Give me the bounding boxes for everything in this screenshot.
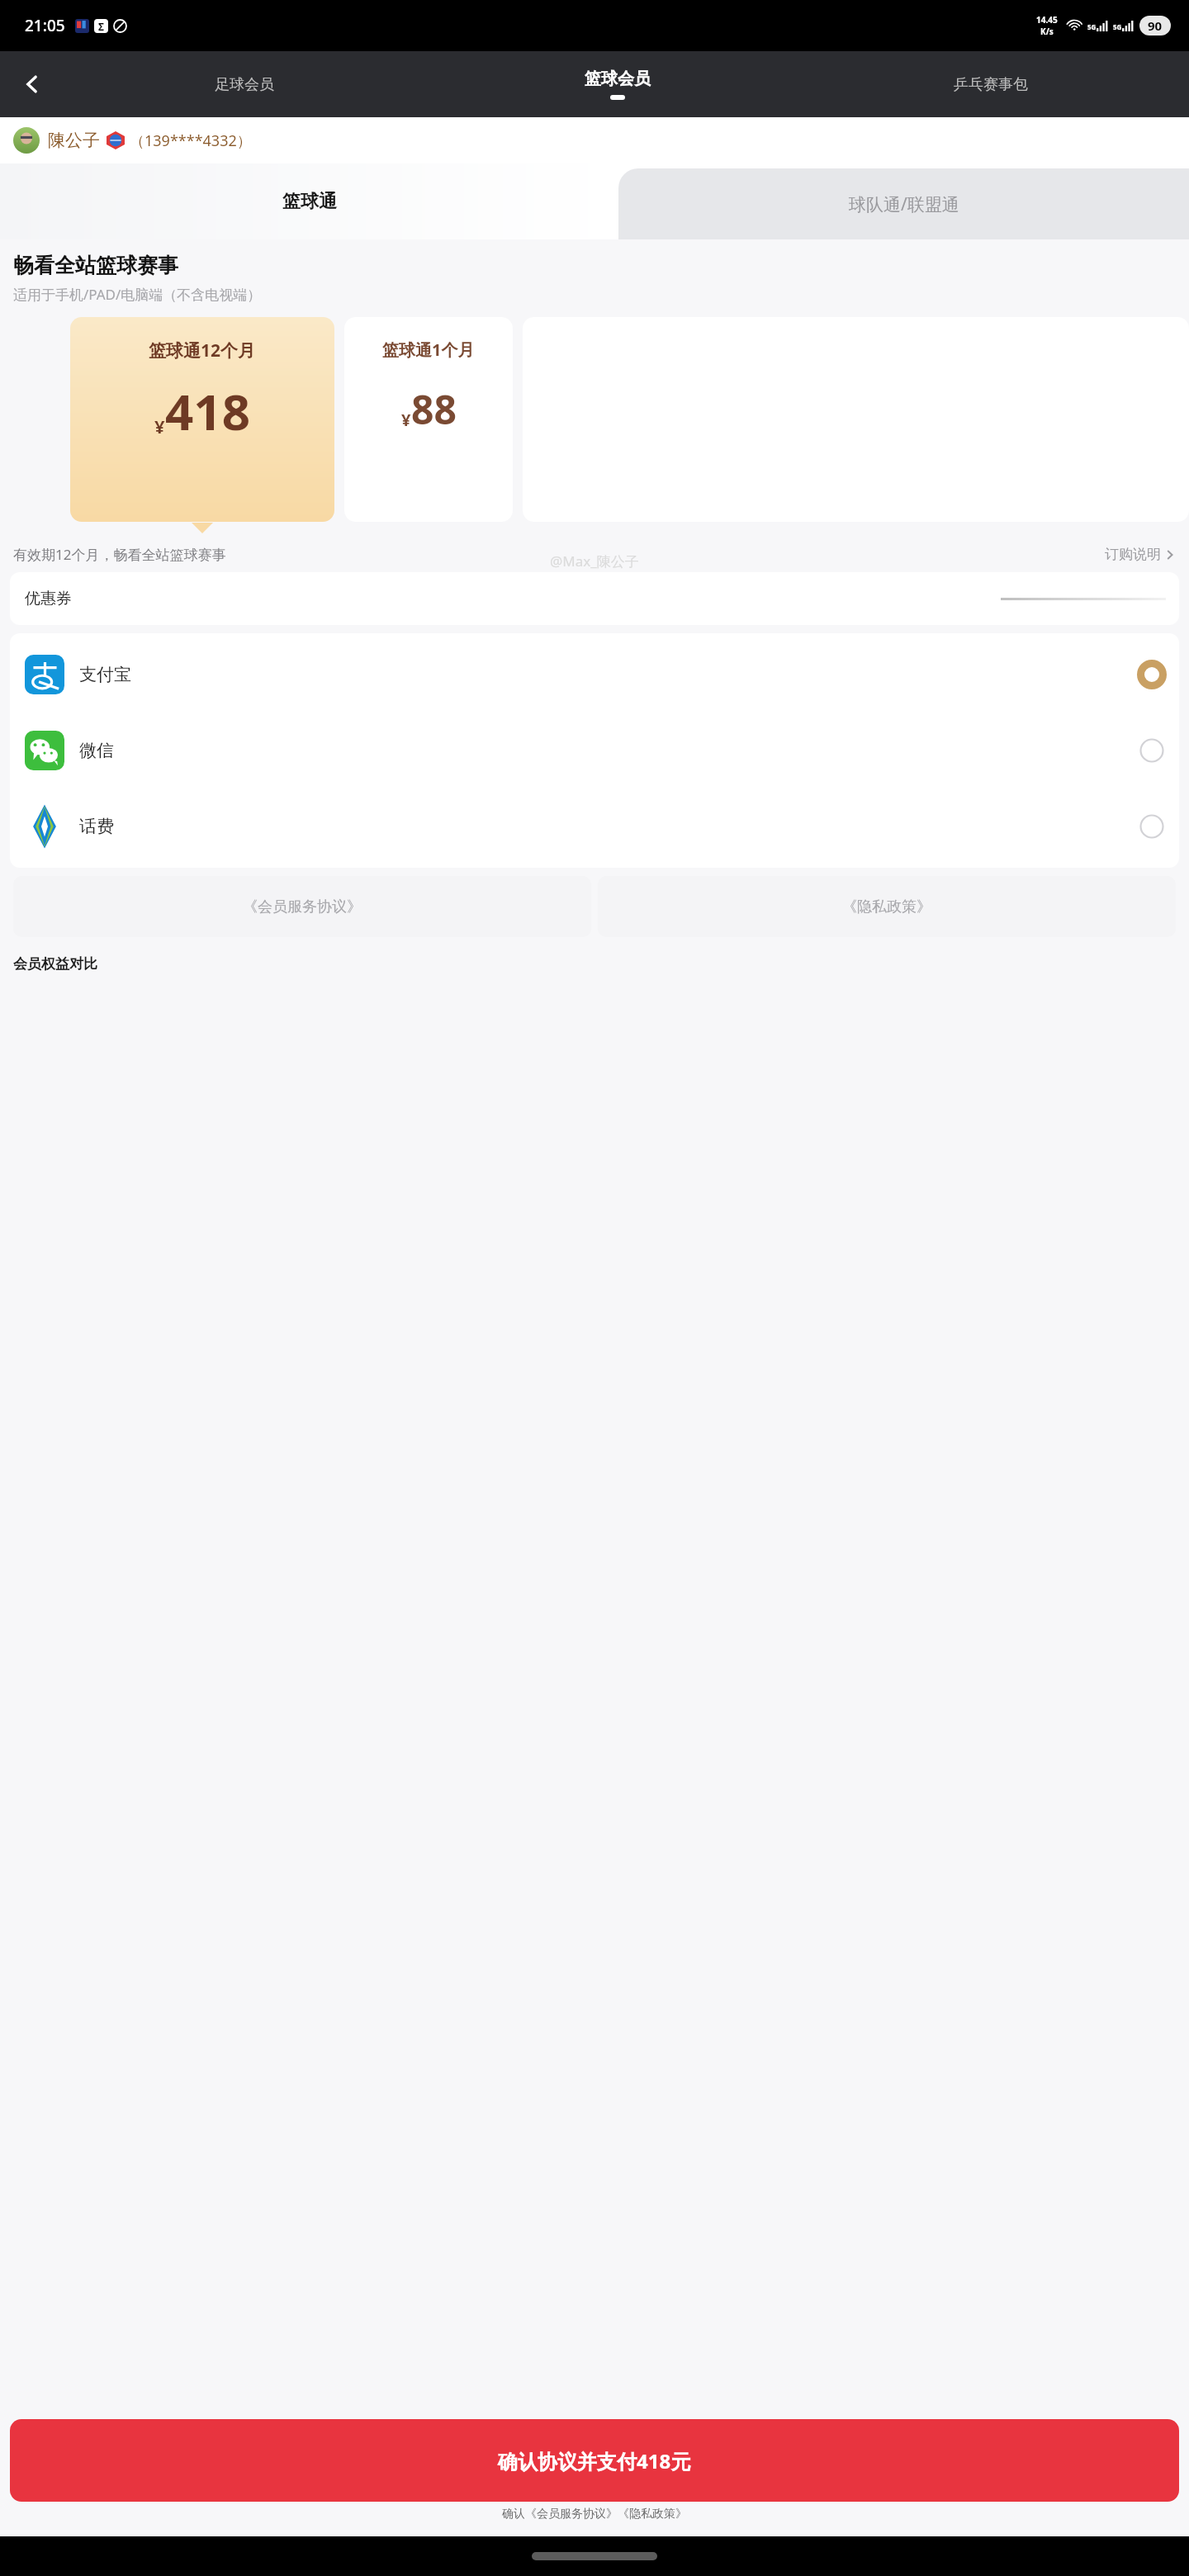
staticText: 有效期12个月，畅看全站篮球赛事 [13, 545, 226, 564]
button[interactable]: 话费 [10, 788, 1179, 864]
staticText: 优惠券 [25, 589, 72, 608]
button[interactable]: 支付宝 [10, 637, 1179, 713]
staticText: K/s [1040, 26, 1054, 37]
staticText: 适用于手机/PAD/电脑端（不含电视端） [13, 285, 262, 304]
button[interactable]: 球队通/联盟通 [618, 168, 1189, 239]
staticText: 418 [165, 377, 250, 445]
staticText: 88 [411, 382, 457, 436]
button[interactable]: 订购说明 [1105, 546, 1176, 563]
staticText: 微信 [79, 740, 114, 761]
staticText: 足球会员 [215, 75, 274, 94]
button[interactable]: 优惠券 [10, 572, 1179, 625]
button[interactable]: Back [21, 73, 43, 95]
staticText: 陳公子 [48, 130, 100, 151]
staticText: 球队通/联盟通 [849, 192, 959, 216]
button[interactable]: 篮球会员 [431, 51, 804, 117]
staticText: 会员权益对比 [13, 955, 97, 973]
button[interactable]: 篮球通 [0, 163, 618, 239]
button[interactable]: 确认协议并支付418元 [10, 2419, 1179, 2502]
staticText: 话费 [79, 816, 114, 837]
button[interactable]: 陳公子 [13, 127, 1189, 154]
button[interactable]: 微信 [10, 713, 1179, 788]
staticText: 21:05 [25, 15, 65, 36]
staticText: 5G [1113, 22, 1122, 31]
staticText: 篮球通 [282, 190, 337, 213]
staticText: 《会员服务协议》 [243, 897, 362, 916]
staticText: 确认协议并支付418元 [498, 2447, 691, 2474]
staticText: 《隐私政策》 [842, 897, 931, 916]
staticText: 5G [1087, 22, 1097, 31]
staticText: 篮球通12个月 [149, 339, 256, 362]
staticText: Σ [98, 20, 104, 33]
staticText: 确认《会员服务协议》《隐私政策》 [0, 2507, 1189, 2522]
button[interactable]: 《会员服务协议》 [13, 876, 591, 937]
staticText: （139****4332） [130, 130, 252, 151]
button[interactable]: 篮球通12个月 [70, 317, 334, 522]
staticText: 篮球通1个月 [382, 339, 475, 361]
staticText: 支付宝 [79, 664, 131, 685]
button[interactable]: 《隐私政策》 [598, 876, 1176, 937]
staticText: 篮球会员 [585, 69, 651, 89]
button[interactable]: 篮球通1个月 [344, 317, 513, 522]
staticText: @Max_陳公子 [550, 552, 639, 571]
button[interactable]: 乒乓赛事包 [804, 51, 1177, 117]
staticText: 90 [1148, 17, 1163, 34]
staticText: 乒乓赛事包 [954, 75, 1028, 94]
staticText: 畅看全站篮球赛事 [13, 253, 178, 278]
button[interactable]: 足球会员 [58, 51, 431, 117]
staticText: ¥ [154, 414, 165, 438]
staticText: 订购说明 [1105, 546, 1161, 563]
staticText: ¥ [401, 409, 411, 431]
staticText: 14.45 [1036, 14, 1058, 26]
